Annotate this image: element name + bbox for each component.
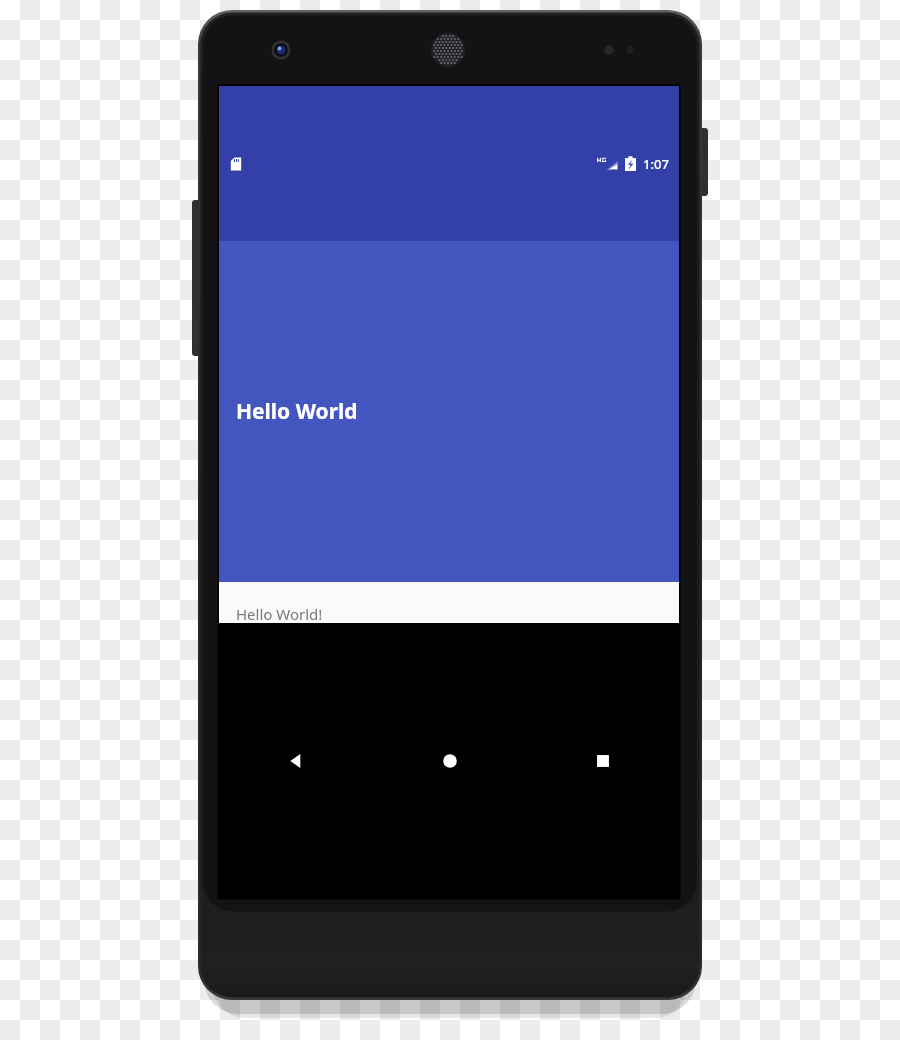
staticText: Hello World!: [236, 604, 323, 623]
button[interactable]: Hello World: [219, 241, 679, 582]
staticText: 1:07: [643, 155, 669, 173]
button[interactable]: Recent apps: [526, 623, 679, 898]
button[interactable]: Back: [219, 623, 373, 898]
button[interactable]: Home: [373, 623, 526, 898]
staticText: Hello World: [236, 397, 358, 426]
